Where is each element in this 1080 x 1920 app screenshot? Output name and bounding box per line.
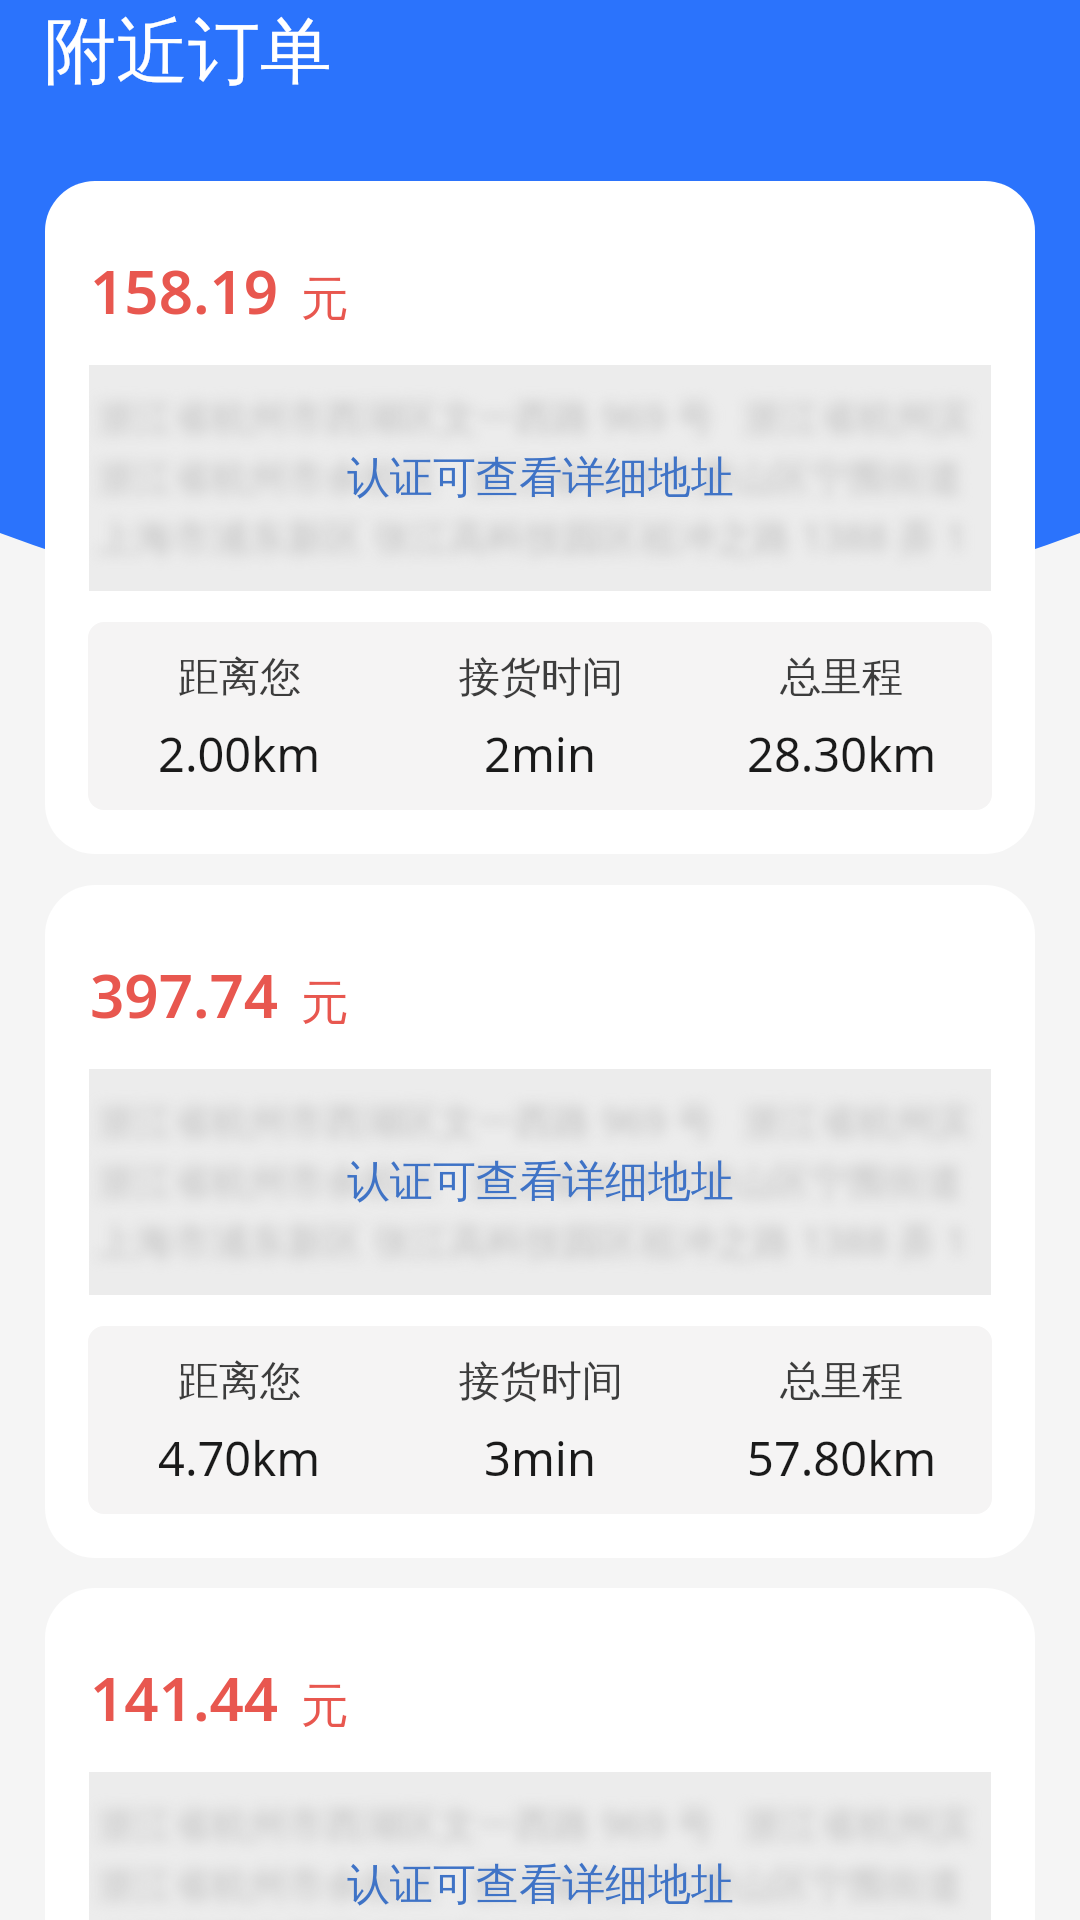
staticText: 接货时间 <box>459 1356 623 1408</box>
staticText: 28.30km <box>747 722 937 786</box>
button[interactable]: 141.44 <box>45 1588 1035 1920</box>
staticText: 附近订单 <box>44 7 332 98</box>
staticText: 浙江省杭州市余杭区 浙江省杭州市萧山区宁围街道市心路 199 号 收 <box>97 1857 987 1909</box>
button[interactable]: 158.19 <box>45 181 1035 854</box>
staticText: 4.70km <box>158 1426 321 1490</box>
staticText: 2min <box>484 722 597 786</box>
button[interactable]: 认证可查看详细地址 <box>347 1155 734 1209</box>
staticText: 3min <box>484 1426 597 1490</box>
staticText: 397.74 <box>90 954 279 1036</box>
button[interactable]: 认证可查看详细地址 <box>347 1858 734 1912</box>
staticText: 认证可查看详细地址 <box>347 451 734 505</box>
staticText: 浙江省杭州市西湖区文一西路 969 号 浙江省杭州滨江江南大道 588 发 <box>97 390 987 442</box>
staticText: 元 <box>301 973 349 1033</box>
staticText: 认证可查看详细地址 <box>347 1858 734 1912</box>
staticText: 浙江省杭州市余杭区 浙江省杭州市萧山区宁围街道市心路 199 号 收 <box>97 450 987 502</box>
staticText: 接货时间 <box>459 652 623 704</box>
staticText: 上海市浦东新区 张江高科技园区祖冲之路 1388 弄 1 号楼 2 层 备注 <box>97 1214 987 1266</box>
staticText: 认证可查看详细地址 <box>347 1155 734 1209</box>
staticText: 距离您 <box>178 652 301 704</box>
staticText: 57.80km <box>747 1426 937 1490</box>
staticText: 158.19 <box>90 250 279 332</box>
staticText: 浙江省杭州市西湖区文一西路 969 号 浙江省杭州滨江江南大道 588 发 <box>97 1094 987 1146</box>
staticText: 元 <box>301 1676 349 1736</box>
staticText: 距离您 <box>178 1356 301 1408</box>
staticText: 总里程 <box>780 1356 903 1408</box>
button[interactable]: 397.74 <box>45 885 1035 1558</box>
staticText: 总里程 <box>780 652 903 704</box>
staticText: 元 <box>301 269 349 329</box>
staticText: 浙江省杭州市西湖区文一西路 969 号 浙江省杭州滨江江南大道 588 发 <box>97 1797 987 1849</box>
button[interactable]: 认证可查看详细地址 <box>347 451 734 505</box>
staticText: 浙江省杭州市余杭区 浙江省杭州市萧山区宁围街道市心路 199 号 收 <box>97 1154 987 1206</box>
staticText: 2.00km <box>158 722 321 786</box>
staticText: 141.44 <box>90 1657 279 1739</box>
staticText: 上海市浦东新区 张江高科技园区祖冲之路 1388 弄 1 号楼 2 层 备注 <box>97 510 987 562</box>
